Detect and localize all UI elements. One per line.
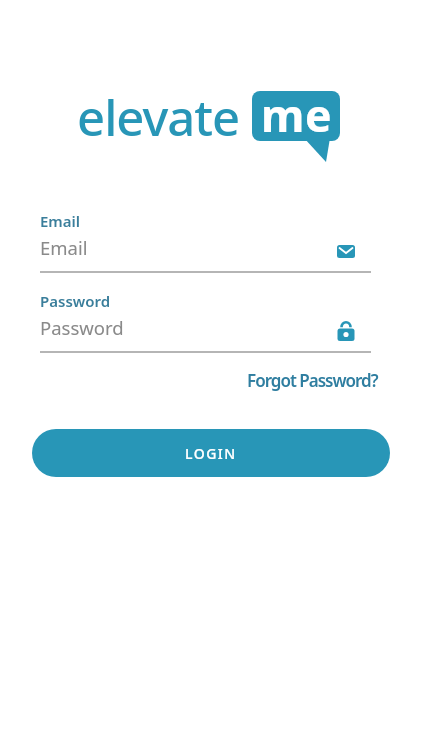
- staticText: LOGIN: [185, 444, 237, 463]
- staticText: Password: [40, 315, 124, 340]
- staticText: me: [261, 84, 332, 145]
- staticText: Email: [40, 235, 88, 260]
- button[interactable]: LOGIN: [32, 429, 390, 477]
- staticText: Password: [40, 291, 111, 311]
- button[interactable]: Forgot Password?: [247, 369, 378, 392]
- staticText: Forgot Password?: [247, 369, 378, 392]
- staticText: Email: [40, 211, 81, 231]
- staticText: elevate: [77, 84, 240, 151]
